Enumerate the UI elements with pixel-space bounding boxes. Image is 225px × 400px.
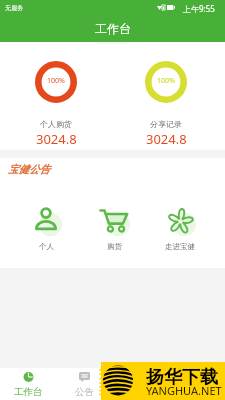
staticText: 公告 [75,386,94,398]
staticText: 个人 [39,242,54,251]
staticText: 3024.8 [146,130,187,148]
staticText: 走进宝健 [165,242,195,251]
staticText: 工作台 [95,21,131,36]
staticText: 购货 [107,242,122,251]
staticText: 个人购货 [40,119,72,129]
staticText: 分享记录 [150,119,182,129]
button[interactable]: 购货 [84,205,144,251]
button[interactable]: 工作台 [2,368,54,400]
staticText: 工作台 [14,386,43,398]
staticText: 100% [157,76,175,86]
staticText: 扬华下载 [146,366,218,389]
button[interactable]: 公告 [58,368,110,400]
button[interactable]: 个人 [16,205,76,251]
staticText: 上午9:55 [183,3,215,14]
staticText: 宝健公告 [8,163,50,176]
staticText: 无服务 [5,4,23,12]
staticText: 100% [47,76,65,86]
staticText: YANGHUA.NET [146,383,222,398]
staticText: 3024.8 [36,130,77,148]
button[interactable]: 走进宝健 [150,205,210,251]
